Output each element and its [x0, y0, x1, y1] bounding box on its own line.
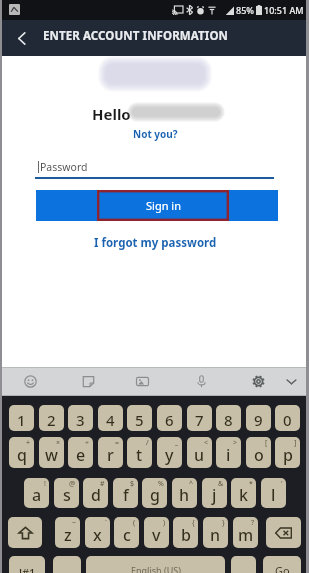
- button[interactable]: Emoji: [16, 367, 44, 396]
- button[interactable]: 2: [39, 405, 64, 431]
- staticText: }: [222, 518, 225, 528]
- staticText: Hello: [92, 104, 131, 124]
- staticText: 10:51 AM: [264, 4, 304, 16]
- button[interactable]: Hide keyboard: [277, 367, 305, 396]
- button[interactable]: t: [127, 437, 152, 468]
- button[interactable]: j: [202, 478, 227, 508]
- button[interactable]: o: [246, 437, 271, 468]
- staticText: p: [283, 444, 293, 466]
- staticText: ^: [189, 479, 194, 489]
- staticText: Go: [275, 563, 290, 573]
- staticText: r: [107, 444, 114, 466]
- button[interactable]: u: [187, 437, 212, 468]
- staticText: c: [123, 524, 131, 546]
- button[interactable]: GIF: [128, 367, 156, 396]
- button[interactable]: !#1: [9, 556, 45, 573]
- button[interactable]: 7: [187, 405, 212, 431]
- button[interactable]: 4: [98, 405, 123, 431]
- staticText: 5: [135, 410, 144, 430]
- button[interactable]: Shift: [8, 517, 42, 548]
- staticText: j: [212, 484, 217, 506]
- button[interactable]: Not you?: [129, 125, 182, 143]
- staticText: (: [133, 518, 136, 528]
- button[interactable]: f: [113, 478, 138, 508]
- staticText: +: [26, 438, 31, 448]
- staticText: a: [32, 484, 42, 506]
- staticText: s: [63, 484, 71, 506]
- button[interactable]: 8: [216, 405, 241, 431]
- button[interactable]: 6: [157, 405, 182, 431]
- staticText: 7: [195, 410, 204, 430]
- staticText: m: [238, 524, 254, 546]
- staticText: #: [100, 479, 105, 489]
- button[interactable]: a: [24, 478, 49, 508]
- staticText: k: [239, 484, 248, 506]
- staticText: !#1: [19, 565, 36, 573]
- staticText: ): [163, 518, 166, 528]
- staticText: ÷: [85, 438, 90, 448]
- button[interactable]: I forgot my password: [90, 233, 221, 253]
- button[interactable]: q: [9, 437, 34, 468]
- staticText: 8: [224, 410, 233, 430]
- button[interactable]: Stickers: [74, 367, 102, 396]
- staticText: h: [179, 484, 190, 506]
- staticText: =: [115, 438, 120, 448]
- staticText: 6: [165, 410, 174, 430]
- button[interactable]: 9: [246, 405, 271, 431]
- button[interactable]: i: [216, 437, 241, 468]
- button[interactable]: ,: [53, 556, 81, 573]
- staticText: ': [281, 479, 283, 489]
- staticText: 85%: [236, 4, 254, 16]
- button[interactable]: Backspace: [266, 517, 301, 548]
- button[interactable]: 1: [9, 405, 34, 431]
- staticText: >: [233, 438, 238, 448]
- staticText: z: [64, 524, 72, 546]
- button[interactable]: d: [83, 478, 108, 508]
- staticText: English (US): [131, 564, 181, 573]
- staticText: !: [44, 479, 46, 489]
- button[interactable]: Voice input: [187, 367, 215, 396]
- staticText: <: [204, 438, 209, 448]
- staticText: Not you?: [133, 127, 178, 141]
- button[interactable]: English (US): [86, 556, 225, 573]
- button[interactable]: s: [54, 478, 79, 508]
- staticText: /: [146, 438, 149, 448]
- button[interactable]: 5: [127, 405, 152, 431]
- staticText: {: [192, 518, 195, 528]
- button[interactable]: .: [231, 556, 256, 573]
- staticText: l: [271, 484, 276, 506]
- button[interactable]: w: [39, 437, 64, 468]
- button[interactable]: Back: [6, 20, 38, 56]
- staticText: i: [226, 444, 231, 466]
- button[interactable]: z: [55, 517, 80, 548]
- button[interactable]: e: [68, 437, 93, 468]
- staticText: [: [265, 438, 268, 448]
- button[interactable]: 3: [68, 405, 93, 431]
- button[interactable]: 0: [275, 405, 300, 431]
- staticText: b: [181, 524, 191, 546]
- button[interactable]: p: [275, 437, 300, 468]
- button[interactable]: k: [231, 478, 256, 508]
- staticText: ×: [56, 438, 61, 448]
- button[interactable]: n: [203, 517, 228, 548]
- staticText: 4: [106, 410, 115, 430]
- staticText: f: [123, 484, 129, 506]
- button[interactable]: c: [114, 517, 139, 548]
- button[interactable]: Sign in: [36, 190, 278, 221]
- staticText: Sign in: [146, 198, 181, 213]
- button[interactable]: b: [173, 517, 198, 548]
- staticText: 2: [47, 410, 56, 430]
- staticText: v: [152, 524, 161, 546]
- button[interactable]: h: [172, 478, 197, 508]
- button[interactable]: l: [261, 478, 286, 508]
- button[interactable]: g: [142, 478, 167, 508]
- button[interactable]: v: [144, 517, 169, 548]
- button[interactable]: y: [157, 437, 182, 468]
- button[interactable]: Go: [263, 556, 301, 573]
- button[interactable]: m: [233, 517, 258, 548]
- button[interactable]: r: [98, 437, 123, 468]
- button[interactable]: x: [85, 517, 110, 548]
- staticText: _: [175, 438, 179, 448]
- button[interactable]: Keyboard settings: [244, 367, 272, 396]
